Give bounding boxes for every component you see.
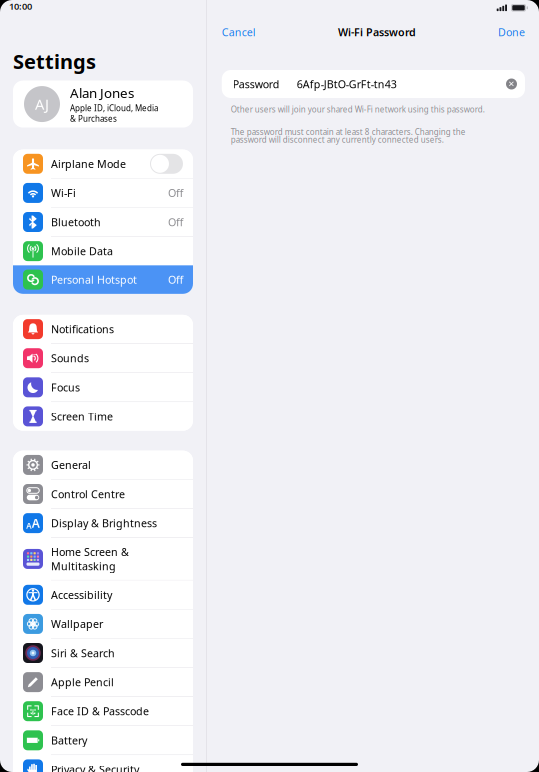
button[interactable]: General	[13, 451, 193, 479]
button[interactable]: Notifications	[13, 315, 193, 343]
staticText: General	[51, 458, 91, 472]
staticText: Apple ID, iCloud, Media	[70, 103, 158, 113]
staticText: password will disconnect any currently c…	[231, 134, 444, 145]
staticText: Siri & Search	[51, 646, 115, 660]
staticText: Wi-Fi Password	[338, 25, 416, 39]
staticText: Password	[233, 77, 280, 91]
staticText: Display & Brightness	[51, 516, 157, 530]
button[interactable]: Done	[498, 20, 525, 44]
button[interactable]: Screen Time	[13, 402, 193, 431]
staticText: Screen Time	[51, 409, 113, 423]
staticText: Focus	[51, 380, 80, 394]
staticText: Personal Hotspot	[51, 272, 137, 287]
staticText: Other users will join your shared Wi-Fi …	[231, 104, 485, 115]
staticText: Wi-Fi	[51, 186, 76, 200]
staticText: Face ID & Passcode	[51, 704, 149, 718]
button[interactable]: Bluetooth	[13, 208, 193, 236]
button[interactable]: Personal Hotspot	[13, 265, 193, 294]
button[interactable]: A	[13, 509, 193, 537]
button[interactable]: Sounds	[13, 344, 193, 372]
button[interactable]: Battery	[13, 726, 193, 755]
staticText: 10:00	[9, 0, 32, 12]
button[interactable]: AJ	[0, 81, 206, 128]
staticText: Bluetooth	[51, 215, 101, 229]
staticText: Alan Jones	[70, 84, 134, 102]
staticText: 6Afp-JBtO-GrFt-tn43	[297, 77, 397, 91]
staticText: A	[26, 520, 31, 531]
button[interactable]: Mobile Data	[13, 237, 193, 265]
staticText: Off	[168, 272, 183, 287]
staticText: Mobile Data	[51, 244, 113, 258]
staticText: Done	[498, 25, 525, 39]
button[interactable]: Clear text	[506, 78, 517, 89]
button[interactable]: Wi-Fi	[13, 179, 193, 207]
staticText: Airplane Mode	[51, 157, 126, 171]
staticText: Off	[168, 186, 183, 200]
staticText: Wallpaper	[51, 617, 103, 631]
button[interactable]: Face ID & Passcode	[13, 697, 193, 725]
staticText: Off	[168, 215, 183, 229]
button[interactable]: Apple Pencil	[13, 668, 193, 696]
button[interactable]: Accessibility	[13, 581, 193, 609]
staticText: & Purchases	[70, 113, 117, 124]
button[interactable]: Home Screen & Multitasking	[13, 538, 193, 580]
staticText: Control Centre	[51, 487, 125, 501]
button[interactable]: Siri & Search	[13, 639, 193, 667]
staticText: Privacy & Security	[51, 762, 139, 772]
staticText: Cancel	[222, 25, 256, 39]
staticText: Notifications	[51, 322, 114, 336]
staticText: Sounds	[51, 351, 89, 365]
staticText: Home Screen & Multitasking	[51, 545, 129, 573]
staticText: Apple Pencil	[51, 675, 114, 689]
staticText: ✕	[508, 79, 515, 89]
staticText: A	[32, 515, 40, 531]
button[interactable]: Wallpaper	[13, 610, 193, 638]
staticText: AJ	[35, 94, 49, 114]
button[interactable]: Airplane Mode	[13, 150, 193, 178]
button[interactable]: Cancel	[222, 20, 256, 44]
button[interactable]: Privacy & Security	[13, 755, 193, 772]
staticText: Battery	[51, 733, 87, 747]
button[interactable]: Control Centre	[13, 480, 193, 508]
button[interactable]: Focus	[13, 373, 193, 402]
staticText: The password must contain at least 8 cha…	[231, 127, 466, 137]
staticText: Settings	[13, 48, 96, 75]
staticText: Accessibility	[51, 588, 112, 602]
